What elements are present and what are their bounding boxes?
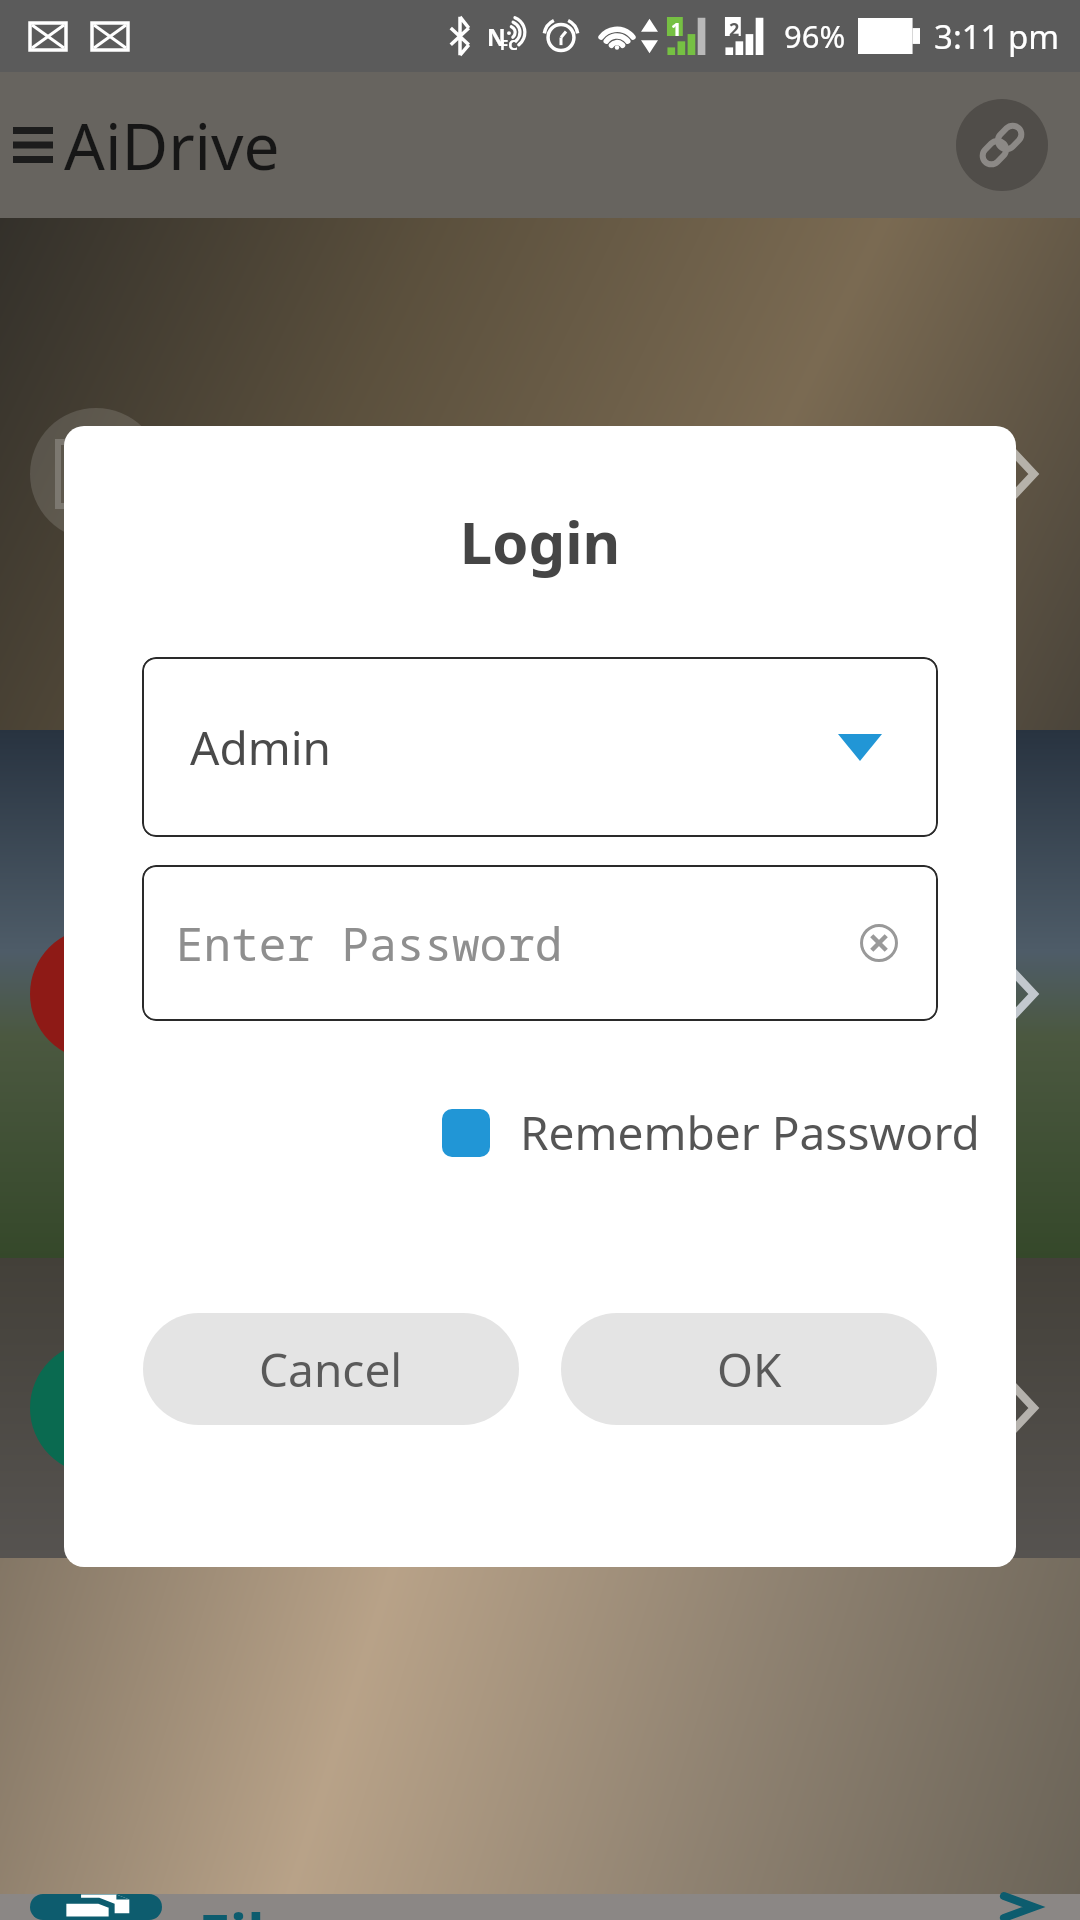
staticText: Login <box>64 502 1016 581</box>
button[interactable] <box>0 1258 1080 1558</box>
staticText: Enter Password <box>176 912 563 975</box>
staticText: 3:11 pm <box>934 14 1060 59</box>
staticText: Admin <box>190 716 331 779</box>
button[interactable]: Clear password <box>852 916 906 970</box>
button[interactable]: OK <box>561 1313 937 1425</box>
button[interactable]: Remember Password <box>442 1101 980 1164</box>
button[interactable]: Enter Password <box>142 865 938 1021</box>
button[interactable]: Share link <box>956 99 1048 191</box>
button[interactable]: Photos <box>0 218 1080 730</box>
staticText: Remember Password <box>520 1101 980 1164</box>
button[interactable]: Menu <box>2 114 64 176</box>
staticText: Files <box>198 1894 329 1920</box>
staticText: FC <box>500 34 518 54</box>
button[interactable] <box>0 730 1080 1258</box>
staticText: 96% <box>784 15 846 57</box>
button[interactable]: Admin <box>142 657 938 837</box>
staticText: Cancel <box>259 1338 403 1401</box>
staticText: AiDrive <box>64 102 280 189</box>
staticText: N <box>487 21 506 52</box>
button[interactable] <box>0 1558 1080 1894</box>
staticText: 2 <box>729 17 740 42</box>
button[interactable]: Files <box>0 1894 1080 1920</box>
button[interactable]: Cancel <box>143 1313 519 1425</box>
staticText: OK <box>717 1338 782 1401</box>
staticText: 1 <box>671 17 682 42</box>
